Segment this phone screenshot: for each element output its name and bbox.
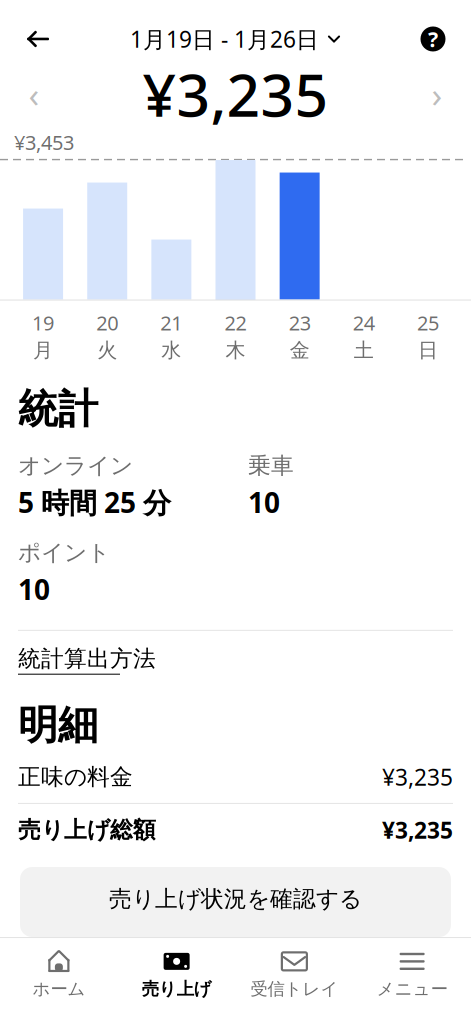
button[interactable]: 戻る	[16, 17, 60, 61]
staticText: 25	[417, 309, 439, 336]
staticText: ポイント	[18, 539, 110, 567]
staticText: 売り上げ	[142, 978, 212, 1000]
staticText: 明細	[18, 701, 98, 750]
staticText: 受信トレイ	[250, 978, 338, 1000]
staticText: ¥3,235	[142, 55, 328, 133]
staticText: ¥3,235	[382, 762, 453, 792]
staticText: ¥3,453	[14, 129, 74, 156]
staticText: 火	[97, 338, 117, 363]
staticText: 月	[33, 338, 53, 363]
button[interactable]: 受信トレイ	[235, 940, 353, 1000]
button[interactable]: 統計算出方法	[18, 645, 156, 675]
staticText: 統計	[18, 385, 98, 434]
staticText: 19	[32, 309, 54, 336]
button[interactable]: ホーム	[0, 940, 118, 1000]
staticText: ホーム	[32, 978, 85, 1000]
staticText: 10	[248, 484, 280, 521]
button[interactable]: 1月19日 - 1月26日	[122, 16, 349, 62]
staticText: 土	[354, 338, 374, 363]
button[interactable]: 次の週	[415, 72, 459, 116]
staticText: ¥3,235	[382, 815, 453, 845]
staticText: 統計算出方法	[18, 645, 156, 673]
staticText: 売り上げ状況を確認する	[109, 885, 362, 913]
staticText: 10	[18, 571, 50, 608]
staticText: ?	[428, 25, 438, 53]
button[interactable]: メニュー	[353, 940, 471, 1000]
staticText: 売り上げ総額	[18, 816, 156, 844]
staticText: 22	[224, 309, 246, 336]
staticText: 木	[225, 338, 245, 363]
staticText: 24	[353, 309, 375, 336]
staticText: オンライン	[18, 452, 133, 480]
staticText: 20	[96, 309, 118, 336]
staticText: 正味の料金	[18, 763, 133, 791]
staticText: 5 時間 25 分	[18, 484, 171, 521]
staticText: 乗車	[248, 452, 294, 480]
staticText: 水	[161, 338, 181, 363]
button[interactable]: 売り上げ状況を確認する	[20, 867, 451, 937]
button[interactable]: 前の週	[12, 72, 56, 116]
staticText: 1月19日 - 1月26日	[130, 24, 319, 54]
staticText: 23	[289, 309, 311, 336]
staticText: ‹	[28, 71, 39, 117]
staticText: ›	[431, 71, 442, 117]
staticText: 21	[160, 309, 182, 336]
button[interactable]: ヘルプ	[411, 17, 455, 61]
button[interactable]: 売り上げ	[118, 940, 236, 1000]
staticText: 日	[418, 338, 438, 363]
staticText: 金	[290, 338, 310, 363]
staticText: メニュー	[377, 978, 448, 1000]
